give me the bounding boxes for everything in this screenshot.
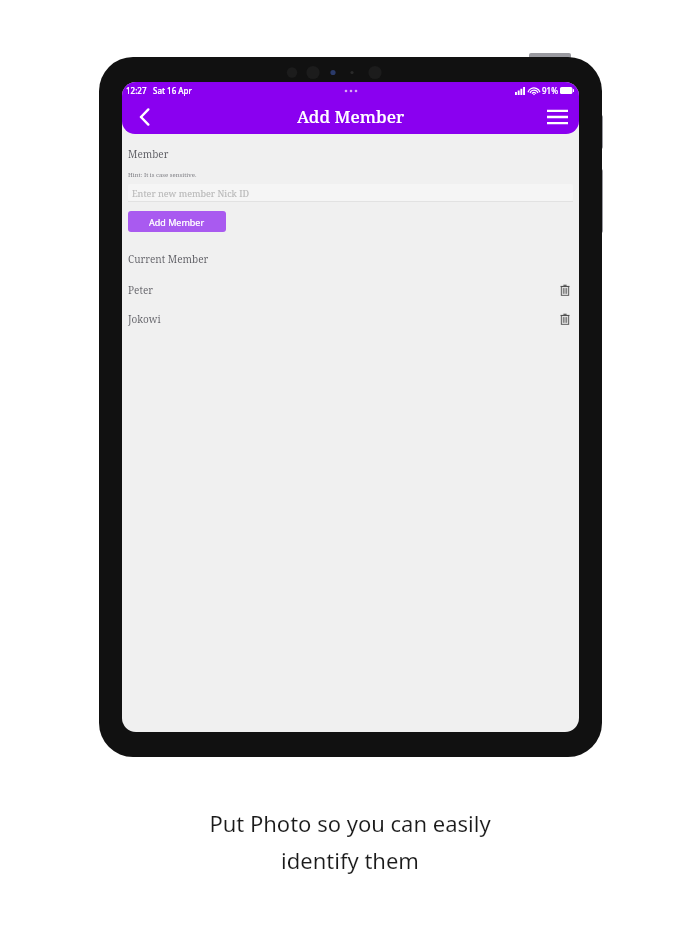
staticText: 12:27 bbox=[126, 85, 147, 96]
button[interactable]: Jokowi bbox=[128, 311, 573, 327]
staticText: Hint: It is case sensitive. bbox=[128, 171, 197, 179]
button[interactable]: Menu bbox=[541, 101, 573, 133]
staticText: Add Member bbox=[149, 216, 205, 228]
button[interactable]: Add Member bbox=[128, 211, 226, 232]
staticText: Current Member bbox=[128, 252, 209, 266]
staticText: Add Member bbox=[297, 105, 405, 128]
staticText: Put Photo so you can easily bbox=[209, 808, 491, 838]
button[interactable]: Delete Jokowi bbox=[557, 311, 573, 327]
staticText: identify them bbox=[281, 845, 419, 875]
staticText: Sat 16 Apr bbox=[153, 85, 192, 96]
button[interactable]: Back bbox=[128, 101, 160, 133]
staticText: Member bbox=[128, 147, 169, 161]
button[interactable]: Enter new member Nick ID bbox=[128, 184, 573, 201]
button[interactable]: Peter bbox=[128, 282, 573, 298]
staticText: 91% bbox=[542, 85, 558, 96]
button[interactable]: Delete Peter bbox=[557, 282, 573, 298]
staticText: Peter bbox=[128, 283, 153, 297]
staticText: Enter new member Nick ID bbox=[132, 187, 250, 199]
staticText: Jokowi bbox=[128, 312, 161, 326]
